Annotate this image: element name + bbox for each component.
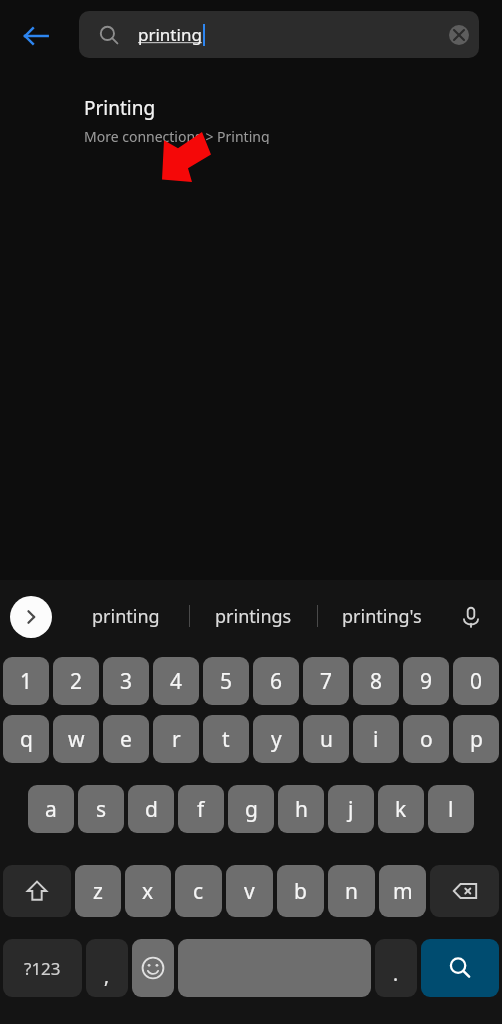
staticText: , bbox=[104, 963, 110, 989]
button[interactable]: More suggestions bbox=[10, 596, 52, 638]
button[interactable]: s bbox=[78, 785, 124, 833]
staticText: s bbox=[96, 795, 107, 824]
staticText: w bbox=[68, 725, 85, 754]
button[interactable]: i bbox=[353, 715, 399, 763]
staticText: 0 bbox=[470, 667, 483, 696]
staticText: k bbox=[395, 795, 407, 824]
button[interactable]: o bbox=[403, 715, 449, 763]
button[interactable]: printing bbox=[62, 580, 189, 652]
button[interactable]: d bbox=[128, 785, 174, 833]
button[interactable]: r bbox=[153, 715, 199, 763]
button[interactable]: a bbox=[28, 785, 74, 833]
staticText: r bbox=[172, 725, 181, 754]
staticText: . bbox=[393, 961, 399, 987]
button[interactable]: , bbox=[86, 939, 128, 997]
staticText: c bbox=[193, 877, 204, 906]
staticText: x bbox=[142, 877, 154, 906]
button[interactable]: Voice input bbox=[448, 594, 494, 640]
staticText: printing bbox=[138, 23, 202, 46]
staticText: v bbox=[244, 877, 255, 906]
button[interactable]: Clear search bbox=[439, 15, 479, 55]
staticText: 9 bbox=[420, 667, 433, 696]
button[interactable]: printing bbox=[79, 11, 479, 58]
staticText: t bbox=[222, 725, 230, 754]
button[interactable]: g bbox=[228, 785, 274, 833]
button[interactable]: 8 bbox=[353, 657, 399, 705]
button[interactable]: Printing bbox=[0, 68, 502, 144]
button[interactable]: printing's bbox=[318, 580, 445, 652]
button[interactable]: c bbox=[175, 865, 222, 917]
button[interactable]: p bbox=[453, 715, 499, 763]
staticText: printing's bbox=[342, 604, 422, 629]
staticText: z bbox=[93, 877, 103, 906]
staticText: o bbox=[420, 725, 433, 754]
staticText: More connections > Printing bbox=[84, 127, 270, 144]
button[interactable]: 6 bbox=[253, 657, 299, 705]
button[interactable]: z bbox=[75, 865, 121, 917]
staticText: 5 bbox=[220, 667, 233, 696]
button[interactable]: printings bbox=[190, 580, 317, 652]
staticText: 1 bbox=[20, 667, 33, 696]
button[interactable]: 4 bbox=[153, 657, 199, 705]
button[interactable]: 2 bbox=[53, 657, 99, 705]
button[interactable]: w bbox=[53, 715, 99, 763]
staticText: i bbox=[373, 725, 379, 754]
button[interactable]: 1 bbox=[3, 657, 49, 705]
staticText: n bbox=[345, 877, 358, 906]
button[interactable]: 5 bbox=[203, 657, 249, 705]
staticText: u bbox=[320, 725, 333, 754]
staticText: printings bbox=[215, 604, 292, 629]
staticText: printing bbox=[92, 604, 160, 629]
button[interactable]: y bbox=[253, 715, 299, 763]
staticText: l bbox=[448, 795, 454, 824]
button[interactable]: 3 bbox=[103, 657, 149, 705]
button[interactable]: x bbox=[125, 865, 171, 917]
button[interactable]: h bbox=[278, 785, 324, 833]
button[interactable]: Shift bbox=[3, 865, 71, 917]
button[interactable]: 9 bbox=[403, 657, 449, 705]
staticText: 4 bbox=[170, 667, 183, 696]
staticText: d bbox=[145, 795, 158, 824]
staticText: f bbox=[197, 795, 205, 824]
staticText: y bbox=[271, 725, 282, 754]
staticText: h bbox=[295, 795, 308, 824]
button[interactable]: b bbox=[277, 865, 324, 917]
button[interactable]: e bbox=[103, 715, 149, 763]
button[interactable]: v bbox=[226, 865, 273, 917]
button[interactable]: 7 bbox=[303, 657, 349, 705]
staticText: q bbox=[20, 725, 33, 754]
staticText: j bbox=[348, 795, 354, 824]
button[interactable]: Backspace bbox=[430, 865, 499, 917]
staticText: 8 bbox=[370, 667, 383, 696]
button[interactable]: j bbox=[328, 785, 374, 833]
button[interactable]: n bbox=[328, 865, 375, 917]
button[interactable]: k bbox=[378, 785, 424, 833]
staticText: p bbox=[470, 725, 483, 754]
button[interactable]: m bbox=[379, 865, 426, 917]
button[interactable]: f bbox=[178, 785, 224, 833]
button[interactable]: 0 bbox=[453, 657, 499, 705]
staticText: a bbox=[45, 795, 57, 824]
button[interactable]: u bbox=[303, 715, 349, 763]
button[interactable]: Space bbox=[178, 939, 371, 997]
staticText: e bbox=[120, 725, 132, 754]
staticText: m bbox=[393, 877, 413, 906]
button[interactable]: l bbox=[428, 785, 474, 833]
button[interactable]: t bbox=[203, 715, 249, 763]
staticText: 3 bbox=[120, 667, 133, 696]
staticText: ?123 bbox=[24, 957, 61, 980]
button[interactable]: Back bbox=[14, 14, 58, 58]
staticText: Printing bbox=[84, 95, 156, 121]
button[interactable]: Search bbox=[421, 939, 499, 997]
button[interactable]: . bbox=[375, 939, 417, 997]
button[interactable]: ?123 bbox=[3, 939, 82, 997]
staticText: b bbox=[294, 877, 307, 906]
button[interactable]: q bbox=[3, 715, 49, 763]
staticText: 2 bbox=[70, 667, 83, 696]
staticText: g bbox=[245, 795, 258, 824]
staticText: 6 bbox=[270, 667, 283, 696]
button[interactable]: Emoji bbox=[132, 939, 174, 997]
staticText: 7 bbox=[320, 667, 333, 696]
